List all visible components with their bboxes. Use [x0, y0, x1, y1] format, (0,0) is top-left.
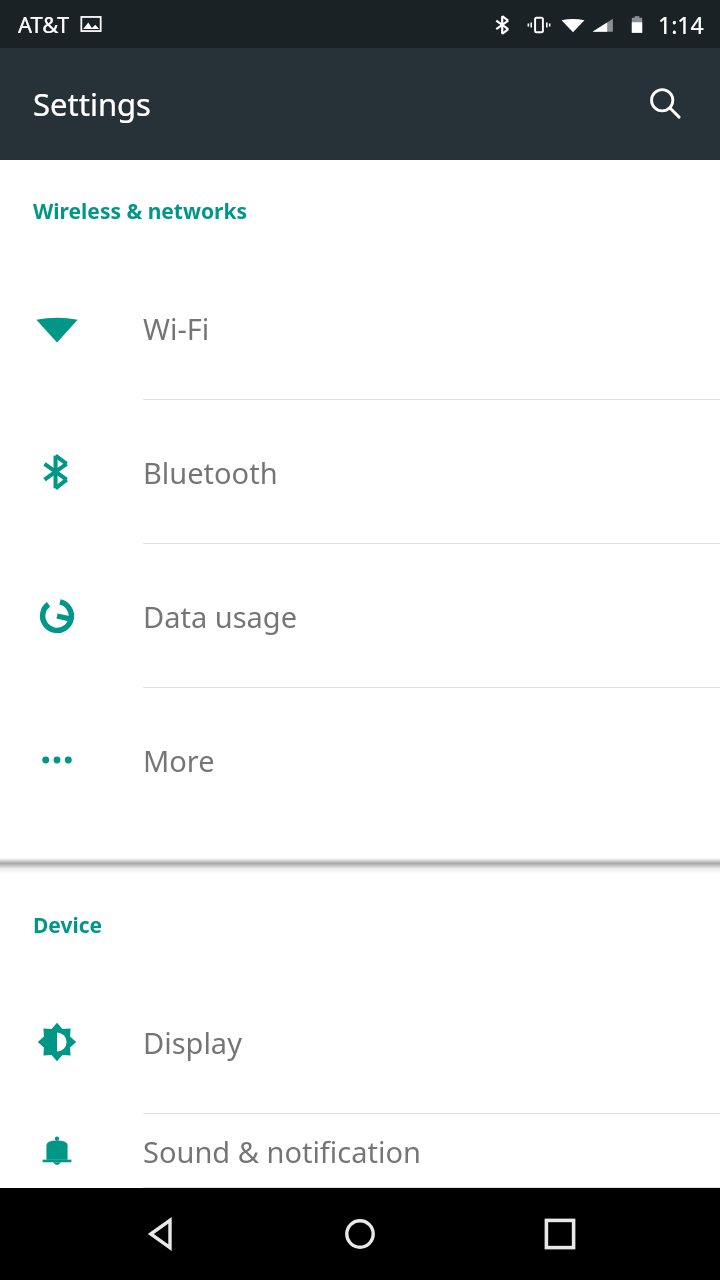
- staticText: Display: [143, 1023, 242, 1062]
- button[interactable]: Home: [328, 1202, 392, 1266]
- button[interactable]: Sound & notification: [0, 1114, 720, 1188]
- button[interactable]: Wi-Fi: [0, 256, 720, 400]
- button[interactable]: Bluetooth: [0, 400, 720, 544]
- button[interactable]: Data usage: [0, 544, 720, 688]
- staticText: More: [143, 741, 215, 780]
- staticText: Sound & notification: [143, 1132, 421, 1171]
- staticText: Bluetooth: [143, 453, 278, 492]
- button[interactable]: More: [0, 688, 720, 832]
- staticText: Wireless & networks: [33, 197, 247, 226]
- staticText: 1:14: [658, 9, 704, 40]
- staticText: AT&T: [18, 9, 70, 39]
- staticText: Settings: [33, 83, 151, 125]
- button[interactable]: Recent apps: [528, 1202, 592, 1266]
- staticText: Data usage: [143, 597, 297, 636]
- staticText: Device: [33, 911, 103, 940]
- button[interactable]: Display: [0, 970, 720, 1114]
- staticText: Wi-Fi: [143, 309, 210, 348]
- button[interactable]: Search: [638, 76, 694, 132]
- button[interactable]: Back: [130, 1202, 194, 1266]
